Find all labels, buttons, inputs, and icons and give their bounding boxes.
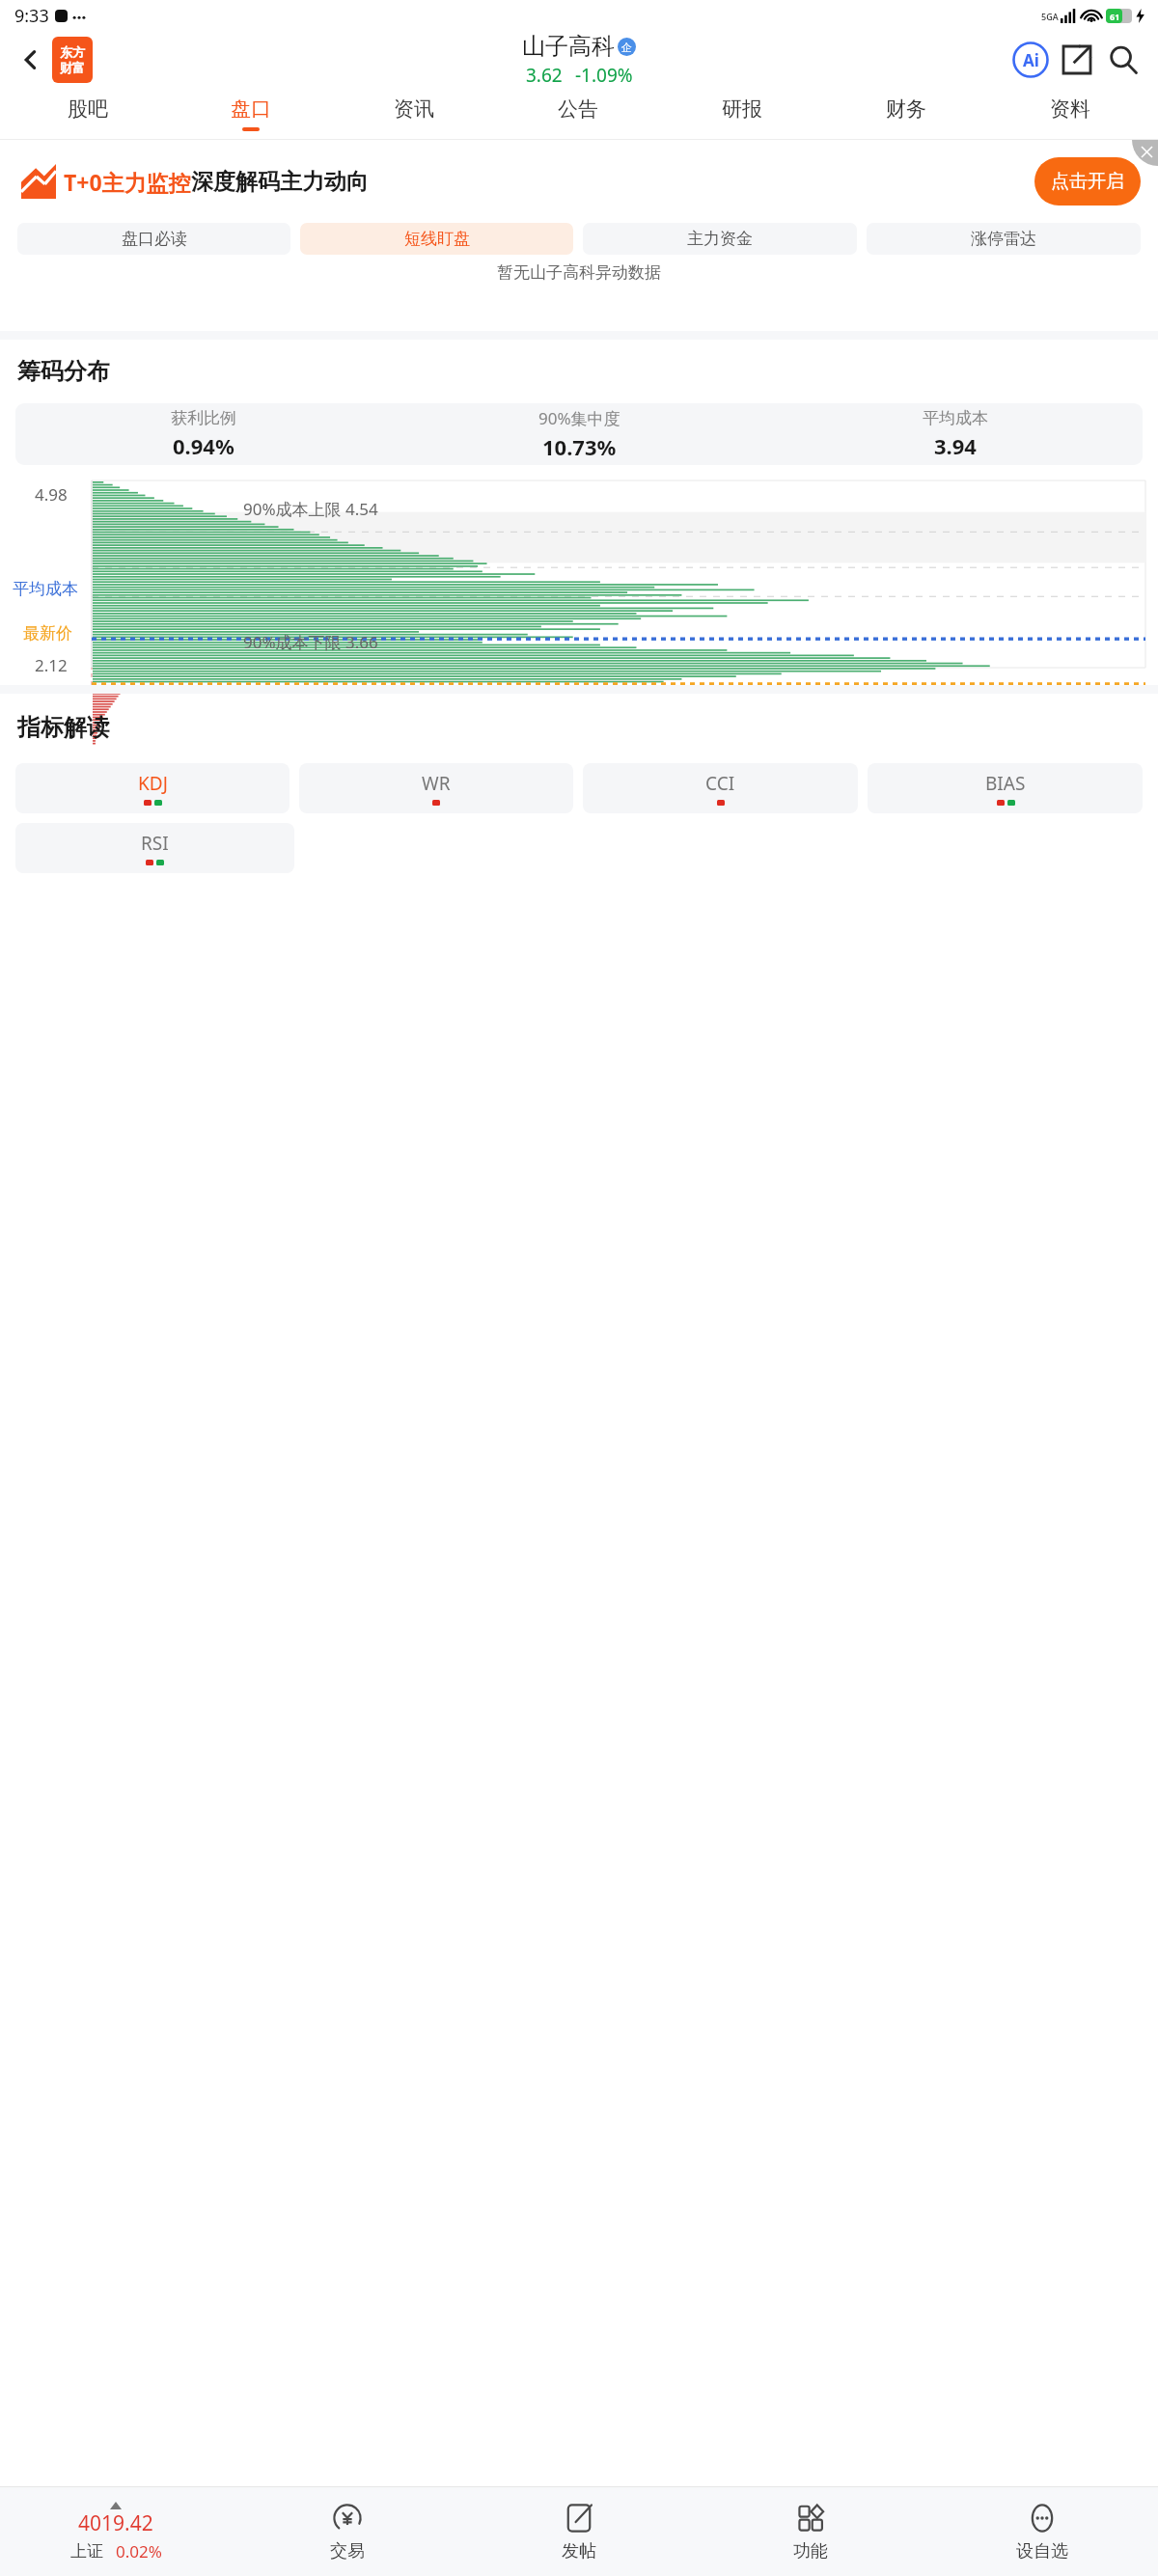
button[interactable]: 东方 — [52, 37, 93, 83]
button[interactable]: 资讯 — [332, 88, 496, 139]
button[interactable]: Close — [1132, 140, 1158, 166]
staticText: 10.73% — [542, 432, 617, 461]
button[interactable]: 短线盯盘 — [300, 223, 573, 255]
button[interactable]: Share — [1054, 37, 1100, 83]
staticText: 资讯 — [394, 96, 434, 122]
staticText: 61 — [1110, 11, 1120, 22]
staticText: 筹码分布 — [17, 357, 110, 386]
staticText: 暂无山子高科异动数据 — [0, 262, 1158, 283]
staticText: KDJ — [138, 771, 168, 796]
staticText: 主力资金 — [687, 229, 753, 249]
button[interactable]: 财务 — [824, 88, 988, 139]
button[interactable]: 盘口必读 — [17, 223, 290, 255]
staticText: 9:33 — [14, 4, 49, 28]
staticText: 3.62 — [526, 63, 563, 88]
staticText: 资料 — [1050, 96, 1090, 122]
button[interactable]: 研报 — [660, 88, 824, 139]
button[interactable]: 设自选 — [926, 2502, 1158, 2562]
button[interactable]: 公告 — [496, 88, 660, 139]
staticText: 2.12 — [35, 654, 68, 676]
staticText: 盘口 — [231, 96, 271, 122]
button[interactable]: CCI — [583, 763, 858, 813]
staticText: 企 — [621, 41, 632, 54]
staticText: 5GA — [1041, 11, 1059, 22]
button[interactable]: RSI — [15, 823, 294, 873]
staticText: 4019.42 — [78, 2509, 153, 2537]
staticText: 最新价 — [23, 623, 72, 644]
staticText: 获利比例 — [171, 408, 236, 428]
button[interactable]: WR — [299, 763, 573, 813]
staticText: 指标解读 — [17, 713, 110, 742]
staticText: 财务 — [886, 96, 926, 122]
staticText: 涨停雷达 — [971, 229, 1036, 249]
button[interactable]: 盘口 — [169, 88, 332, 139]
staticText: 交易 — [330, 2540, 365, 2562]
button[interactable]: AI — [1007, 37, 1054, 83]
staticText: WR — [422, 771, 451, 796]
staticText: Ai — [1023, 49, 1039, 71]
button[interactable]: 点击开启 — [1034, 157, 1141, 206]
button[interactable]: 资料 — [988, 88, 1152, 139]
button[interactable]: 股吧 — [6, 88, 169, 139]
button[interactable]: 4019.42 — [0, 2502, 232, 2562]
staticText: 90%成本上限 4.54 — [243, 498, 378, 520]
staticText: 平均成本 — [13, 579, 78, 599]
staticText: 设自选 — [1016, 2540, 1068, 2562]
staticText: 短线盯盘 — [404, 229, 470, 249]
staticText: 0.02% — [116, 2540, 162, 2562]
button[interactable]: 功能 — [695, 2502, 926, 2562]
staticText: 股吧 — [68, 96, 108, 122]
staticText: 90%成本下限 3.66 — [243, 631, 378, 653]
staticText: 点击开启 — [1051, 170, 1124, 193]
button[interactable]: 交易 — [232, 2502, 463, 2562]
staticText: 东方 — [60, 44, 85, 60]
staticText: 发帖 — [562, 2540, 596, 2562]
button[interactable]: 发帖 — [463, 2502, 695, 2562]
staticText: 功能 — [793, 2540, 828, 2562]
staticText: 财富 — [60, 60, 85, 75]
button[interactable]: BIAS — [868, 763, 1143, 813]
staticText: CCI — [705, 771, 735, 796]
staticText: 山子高科 — [522, 32, 615, 61]
button[interactable]: Search — [1100, 37, 1146, 83]
button[interactable]: KDJ — [15, 763, 289, 813]
staticText: 4.98 — [35, 483, 68, 506]
button[interactable]: 主力资金 — [583, 223, 857, 255]
button[interactable]: 涨停雷达 — [867, 223, 1141, 255]
button[interactable]: Back — [10, 39, 52, 81]
staticText: 盘口必读 — [122, 229, 187, 249]
staticText: 深度解码主力动向 — [191, 168, 369, 196]
staticText: 公告 — [558, 96, 598, 122]
staticText: T+0主力监控 — [64, 167, 191, 197]
staticText: 上证 — [70, 2541, 103, 2562]
staticText: 研报 — [722, 96, 762, 122]
staticText: 0.94% — [173, 431, 234, 460]
staticText: 3.94 — [934, 431, 977, 460]
staticText: RSI — [141, 831, 169, 856]
staticText: BIAS — [985, 771, 1026, 796]
staticText: -1.09% — [575, 63, 633, 88]
staticText: 平均成本 — [923, 408, 988, 428]
staticText: 90%集中度 — [538, 407, 620, 429]
